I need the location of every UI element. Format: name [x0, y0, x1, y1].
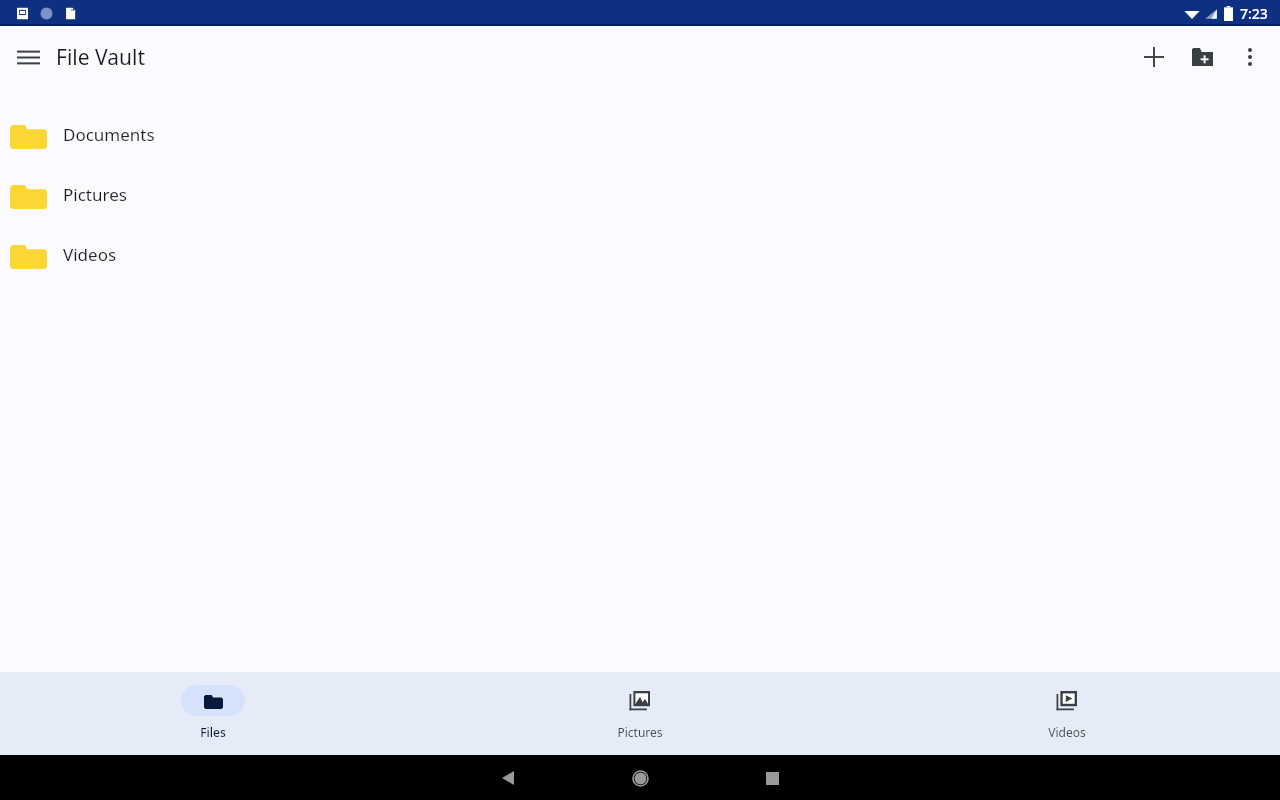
staticText: Videos	[1048, 724, 1086, 740]
button[interactable]: Files	[0, 672, 426, 755]
staticText: Pictures	[617, 724, 663, 740]
button[interactable]: Pictures	[0, 164, 1280, 224]
button[interactable]: Pictures	[426, 672, 853, 755]
button[interactable]: Videos	[0, 224, 1280, 284]
staticText: Pictures	[63, 183, 127, 206]
staticText: Documents	[63, 123, 155, 146]
button[interactable]: Home	[620, 758, 660, 798]
button[interactable]: Back	[488, 758, 528, 798]
button[interactable]: Create new folder	[1178, 33, 1226, 81]
staticText: 7:23	[1240, 4, 1268, 23]
staticText: Files	[200, 724, 226, 740]
button[interactable]: Add	[1130, 33, 1178, 81]
staticText: File Vault	[56, 43, 145, 72]
button[interactable]: Recent apps	[752, 758, 792, 798]
button[interactable]: More options	[1226, 33, 1274, 81]
button[interactable]: Videos	[853, 672, 1280, 755]
button[interactable]: Open navigation menu	[0, 29, 56, 85]
button[interactable]: Documents	[0, 104, 1280, 164]
staticText: Videos	[63, 243, 117, 266]
